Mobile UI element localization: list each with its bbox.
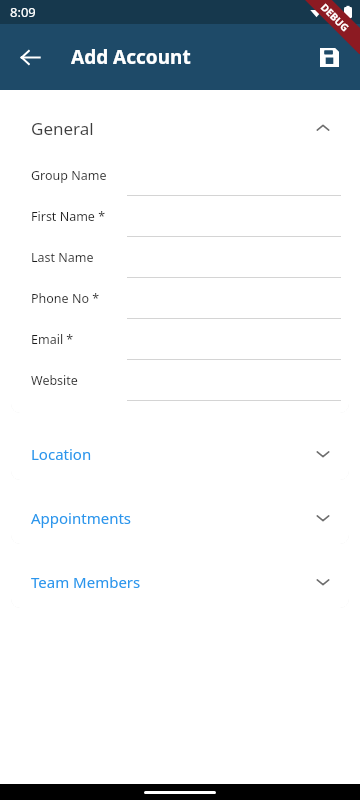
staticText: Appointments xyxy=(31,508,132,528)
staticText: Phone No * xyxy=(31,290,100,307)
staticText: Group Name xyxy=(31,167,107,184)
button[interactable]: Team Members xyxy=(11,556,349,608)
button[interactable]: Save xyxy=(308,36,350,78)
staticText: General xyxy=(31,117,94,140)
button[interactable]: General xyxy=(11,101,349,155)
staticText: First Name * xyxy=(31,208,106,225)
staticText: Website xyxy=(31,372,78,389)
button[interactable]: Last Name xyxy=(11,237,349,278)
button[interactable]: Group Name xyxy=(11,155,349,196)
button[interactable]: Email * xyxy=(11,319,349,360)
button[interactable]: First Name * xyxy=(11,196,349,237)
staticText: Last Name xyxy=(31,249,94,266)
staticText: Location xyxy=(31,444,92,464)
button[interactable]: Phone No * xyxy=(11,278,349,319)
button[interactable]: Location xyxy=(11,428,349,480)
button[interactable]: Back xyxy=(8,35,52,79)
staticText: Add Account xyxy=(71,44,191,70)
button[interactable]: Appointments xyxy=(11,492,349,544)
button[interactable]: Website xyxy=(11,360,349,401)
staticText: Team Members xyxy=(31,572,141,592)
staticText: DEBUG xyxy=(318,0,352,34)
staticText: Email * xyxy=(31,331,74,348)
staticText: 8:09 xyxy=(10,3,36,21)
